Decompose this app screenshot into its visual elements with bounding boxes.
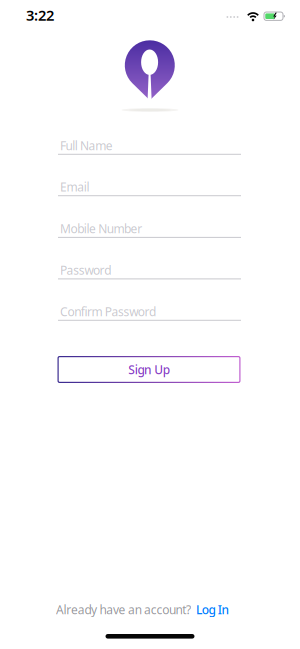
- staticText: Full Name: [60, 137, 113, 153]
- staticText: 3:22: [26, 5, 54, 25]
- staticText: Confirm Password: [60, 303, 156, 319]
- button[interactable]: Sign Up: [57, 356, 240, 383]
- staticText: Email: [60, 179, 89, 195]
- staticText: Password: [60, 262, 111, 278]
- staticText: Log In: [196, 601, 229, 617]
- staticText: Already have an account?: [56, 601, 191, 617]
- staticText: Mobile Number: [60, 221, 142, 236]
- staticText: Sign Up: [128, 361, 170, 377]
- button[interactable]: Log In: [196, 601, 229, 617]
